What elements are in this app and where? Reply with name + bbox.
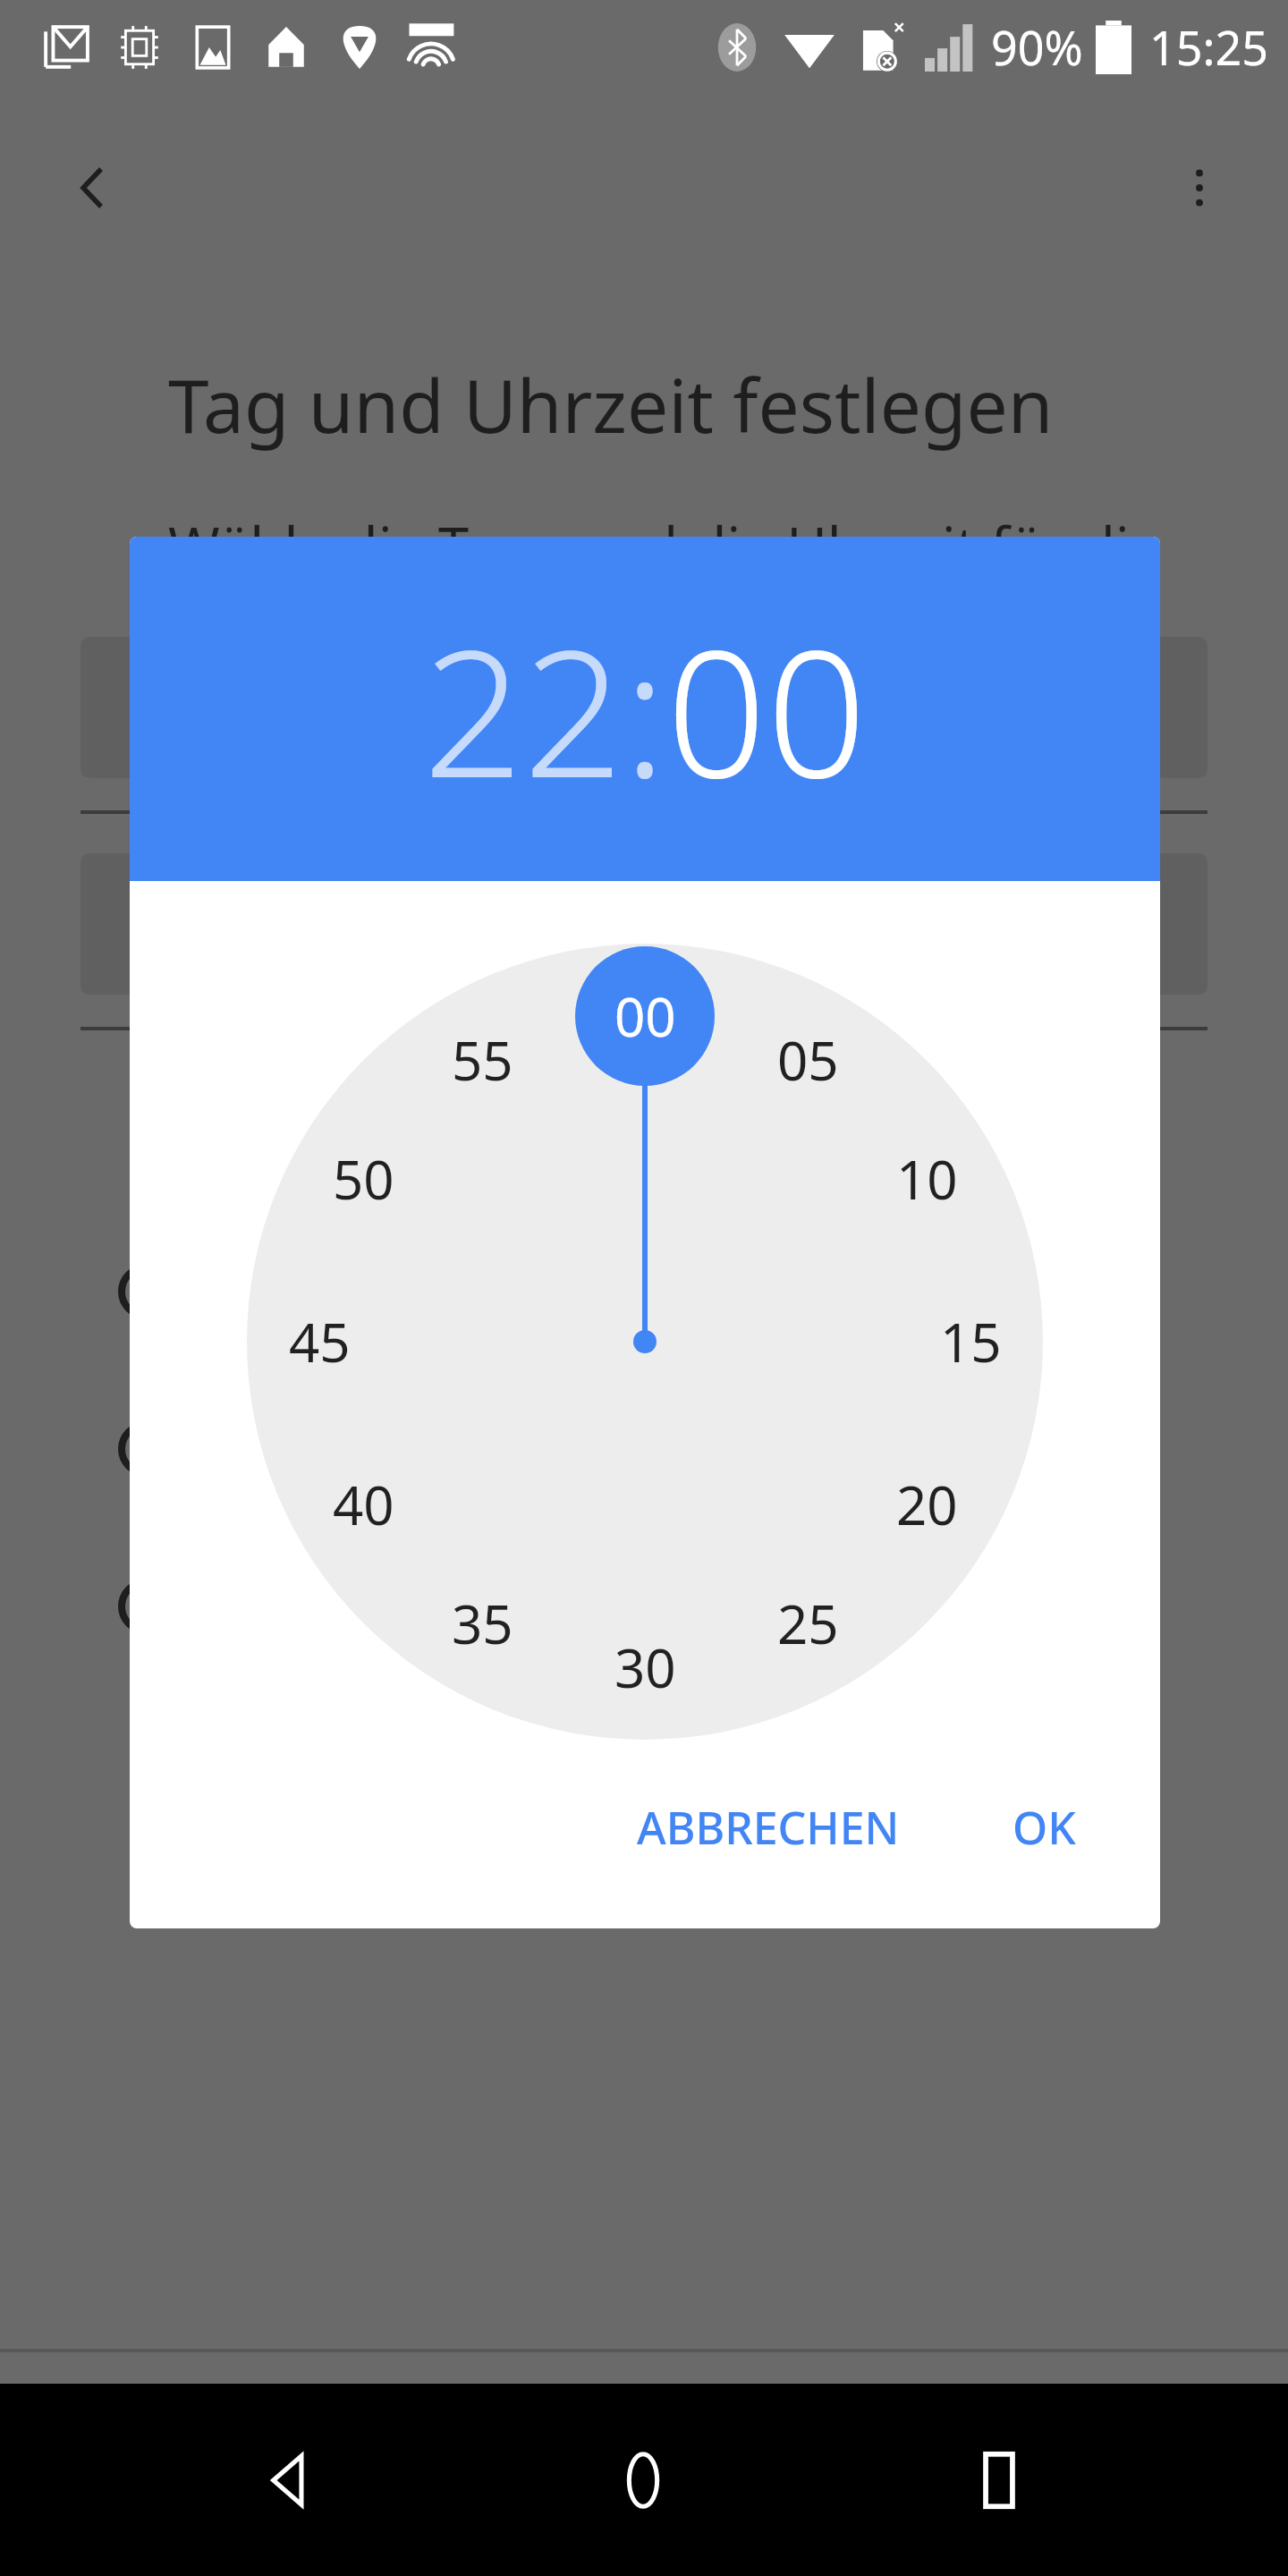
- button[interactable]: OK: [989, 1775, 1099, 1879]
- staticText: 05: [777, 1023, 839, 1097]
- staticText: Wähle die Tage und die Uhrzeit für die: [168, 508, 1161, 583]
- staticText: 15:25: [1149, 15, 1268, 79]
- button[interactable]: 00: [666, 589, 867, 828]
- button[interactable]: Back: [54, 148, 134, 228]
- staticText: Abends vor Arbeitstagen: [224, 1255, 848, 1328]
- staticText: Abends vor Schultagen: [224, 1378, 805, 1452]
- staticText: 40: [333, 1468, 394, 1541]
- button[interactable]: Abends vor Arbeitstagen: [0, 1213, 1288, 1370]
- staticText: 25: [777, 1587, 839, 1660]
- button[interactable]: Fertig: [878, 2402, 1199, 2527]
- button[interactable]: 00: [247, 944, 1043, 1740]
- button[interactable]: Recent apps: [932, 2413, 1066, 2547]
- staticText: 45: [289, 1305, 351, 1378]
- staticText: Tag und Uhrzeit festlegen: [168, 354, 1054, 454]
- button[interactable]: [80, 637, 1207, 778]
- staticText: 35: [452, 1587, 513, 1660]
- staticText: 55: [452, 1023, 513, 1097]
- staticText: :: [623, 589, 666, 828]
- staticText: 00: [614, 979, 676, 1053]
- button[interactable]: More options: [1159, 148, 1240, 228]
- button[interactable]: ABBRECHEN: [614, 1775, 923, 1879]
- staticText: 90%: [991, 15, 1083, 79]
- button[interactable]: 22: [423, 589, 623, 828]
- staticText: 20: [896, 1468, 958, 1541]
- staticText: 50: [333, 1142, 394, 1216]
- staticText: 30: [614, 1631, 676, 1704]
- button[interactable]: Abends vor Schultagen: [0, 1370, 1288, 1528]
- staticText: Werktage: [224, 1570, 467, 1643]
- staticText: 10: [896, 1142, 958, 1216]
- button[interactable]: Home: [576, 2413, 710, 2547]
- staticText: ABBRECHEN: [637, 1797, 900, 1858]
- staticText: 15: [940, 1305, 1002, 1378]
- button[interactable]: Back: [221, 2413, 355, 2547]
- staticText: So. bis Do.: [224, 1452, 470, 1520]
- button[interactable]: [80, 853, 1207, 995]
- staticText: Fertig: [958, 2424, 1120, 2504]
- staticText: OK: [1013, 1797, 1076, 1858]
- button[interactable]: Werktage: [0, 1528, 1288, 1685]
